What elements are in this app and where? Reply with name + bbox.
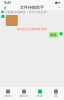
staticText: 文件传输助手 [20,5,44,10]
staticText: 发现 [37,94,43,97]
button[interactable]: 发现 [32,87,48,100]
button[interactable]: More [55,4,63,10]
button[interactable]: Back [1,4,9,10]
staticText: ‹ [4,3,6,12]
staticText: ▮▮ ▰ [55,1,60,4]
staticText: 微信 [5,94,11,97]
staticText: 我 [54,94,57,97]
button[interactable]: 微信 [0,87,16,100]
staticText: 9:41 [4,0,11,5]
button[interactable]: 通讯录 [16,87,32,100]
staticText: 通讯录 [19,94,28,97]
button[interactable]: 我 [48,87,64,100]
staticText: ··· [57,5,60,10]
staticText: 下载微信电脑版，即可文件互传 [5,10,47,14]
staticText: 收到 [51,33,57,37]
staticText: 该消息已过期或被清理 [17,27,47,31]
